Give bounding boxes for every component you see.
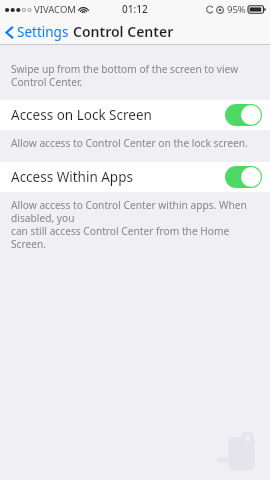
staticText: Control Center: [73, 22, 174, 41]
button[interactable]: Access Within Apps: [0, 162, 270, 192]
button[interactable]: Access on Lock Screen: [0, 100, 270, 130]
staticText: Swipe up from the bottom of the screen t…: [11, 62, 260, 89]
button[interactable]: Toggle on: [225, 166, 262, 188]
staticText: Allow access to Control Center on the lo…: [11, 136, 248, 150]
staticText: 95%: [227, 3, 246, 16]
staticText: 01:12: [122, 2, 148, 16]
button[interactable]: Toggle on: [225, 104, 262, 126]
staticText: Settings: [17, 23, 69, 41]
staticText: Access on Lock Screen: [11, 106, 152, 124]
staticText: Allow access to Control Center within ap…: [11, 198, 260, 251]
staticText: VIVACOM: [34, 3, 76, 16]
button[interactable]: Settings: [0, 20, 75, 44]
staticText: Access Within Apps: [11, 168, 133, 186]
